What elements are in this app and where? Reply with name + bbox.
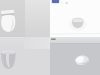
button[interactable]: Photo, wall-hung toilet [0, 0, 50, 37]
button[interactable]: Photo, wall-hung basin [50, 37, 100, 75]
button[interactable]: Photo, counter-top basin [0, 37, 50, 75]
button[interactable]: Photo, toilet from above [50, 0, 100, 37]
